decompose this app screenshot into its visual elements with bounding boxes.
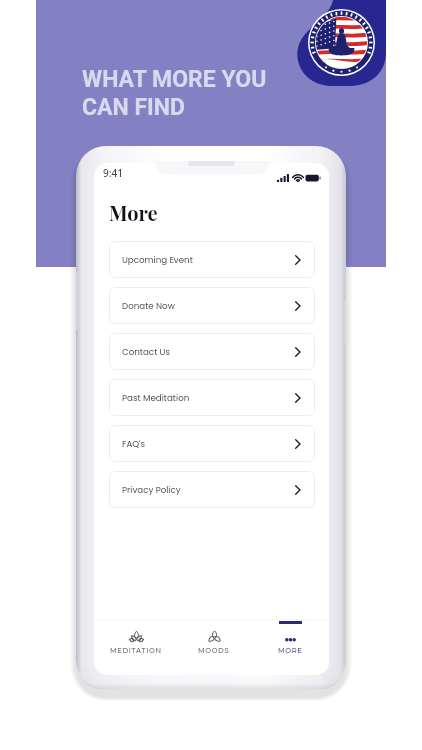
button[interactable]: Past Meditation (109, 379, 315, 416)
button[interactable]: MOODS (175, 619, 252, 675)
button[interactable]: Donate Now (109, 287, 315, 324)
staticText: Upcoming Event (122, 254, 193, 266)
other: Balanced Healing For Heroes logo (308, 9, 375, 76)
staticText: FAQ's (122, 438, 145, 450)
staticText: Contact Us (122, 346, 171, 358)
button[interactable]: MORE (252, 619, 329, 675)
staticText: MEDITATION (110, 646, 162, 654)
button[interactable]: MEDITATION (97, 619, 175, 675)
staticText: Privacy Policy (122, 484, 181, 496)
staticText: MOODS (198, 646, 230, 654)
button[interactable]: Upcoming Event (109, 241, 315, 278)
button[interactable]: Privacy Policy (109, 471, 315, 508)
button[interactable]: FAQ's (109, 425, 315, 462)
staticText: More (109, 199, 158, 226)
staticText: 9:41 (103, 166, 123, 180)
staticText: Donate Now (122, 300, 175, 312)
staticText: MORE (278, 646, 303, 654)
button[interactable]: Contact Us (109, 333, 315, 370)
staticText: WHAT MORE YOU CAN FIND (82, 66, 267, 121)
staticText: Past Meditation (122, 392, 190, 404)
